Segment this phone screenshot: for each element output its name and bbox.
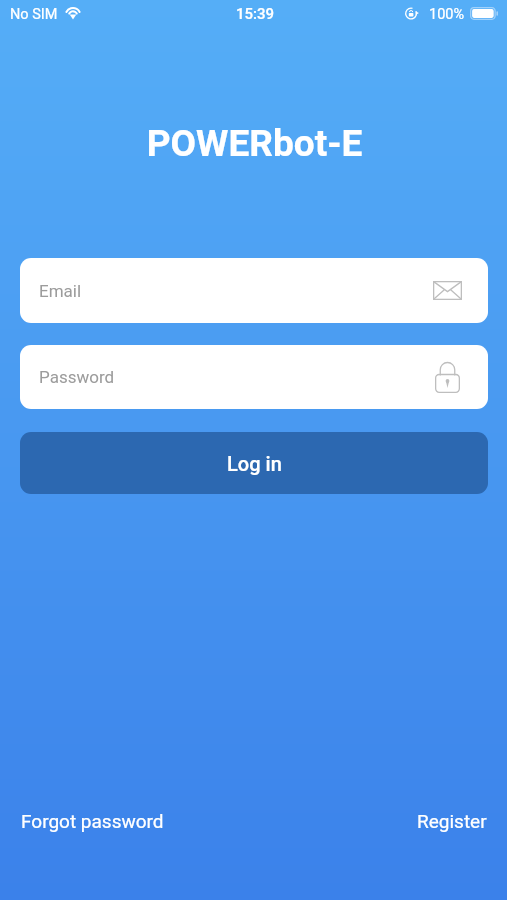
staticText: Password <box>39 367 437 387</box>
button[interactable]: Forgot password <box>21 810 164 832</box>
other: Password <box>435 362 460 393</box>
button[interactable]: Log in <box>20 432 488 494</box>
button[interactable]: Register <box>417 810 487 832</box>
staticText: 100% <box>429 6 465 23</box>
button[interactable]: Email <box>20 258 488 323</box>
staticText: Email <box>39 281 433 301</box>
staticText: POWERbot-E <box>1 122 507 165</box>
staticText: 15:39 <box>236 5 275 23</box>
button[interactable]: Password <box>20 345 488 409</box>
staticText: No SIM <box>10 6 58 23</box>
other: Rotation lock <box>405 7 421 20</box>
other: Email <box>433 281 462 300</box>
staticText: Log in <box>227 452 282 475</box>
